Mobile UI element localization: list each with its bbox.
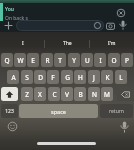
button[interactable]: B [74,87,86,101]
button[interactable]: The [45,37,90,50]
button[interactable]: P [121,53,133,67]
staticText: I'm [108,40,116,47]
staticText: I [22,40,24,47]
button[interactable] [116,8,126,18]
staticText: The [63,40,72,47]
staticText: C [52,90,57,99]
staticText: W [17,56,24,65]
button[interactable] [8,122,17,131]
staticText: D [38,73,43,82]
button[interactable]: F [47,70,59,84]
staticText: You [5,6,14,13]
button[interactable]: J [88,70,100,84]
staticText: I [99,56,102,65]
button[interactable] [119,20,127,31]
staticText: return [109,108,124,115]
staticText: B [78,90,83,99]
staticText: M [104,90,110,99]
staticText: Y [72,56,76,65]
button[interactable] [106,22,115,30]
staticText: On back s [5,15,28,22]
staticText: S [25,73,29,82]
staticText: A [11,73,16,82]
button[interactable]: T [54,53,66,67]
staticText: O [111,56,117,65]
button[interactable] [94,22,101,29]
button[interactable]: W [14,53,26,67]
button[interactable]: L [115,70,127,84]
button[interactable]: E [27,53,39,67]
button[interactable]: N [88,87,100,101]
button[interactable] [16,20,104,31]
button[interactable]: H [74,70,86,84]
button[interactable]: I'm [89,37,134,50]
button[interactable]: C [48,87,60,101]
staticText: H [78,73,83,82]
button[interactable]: 123 [1,104,18,118]
button[interactable]: S [21,70,33,84]
button[interactable]: A [7,70,19,84]
staticText: space [51,108,66,115]
staticText: Z [25,90,29,99]
staticText: L [119,73,123,82]
button[interactable] [4,21,13,30]
button[interactable]: D [34,70,46,84]
staticText: P [125,56,129,65]
button[interactable]: Y [68,53,80,67]
button[interactable]: I [94,53,106,67]
staticText: 123 [5,108,14,115]
staticText: J [93,73,95,82]
button[interactable]: X [34,87,46,101]
staticText: V [65,90,69,99]
button[interactable]: Z [21,87,33,101]
staticText: Q [4,56,10,65]
button[interactable]: O [108,53,120,67]
staticText: U [85,56,90,65]
staticText: R [45,56,50,65]
button[interactable] [1,87,18,101]
button[interactable]: I [0,37,45,50]
button[interactable]: U [81,53,93,67]
button[interactable]: R [41,53,53,67]
staticText: T [58,56,62,65]
button[interactable]: Q [1,53,13,67]
button[interactable]: M [101,87,113,101]
staticText: X [38,90,42,99]
button[interactable]: G [61,70,73,84]
staticText: K [105,73,110,82]
button[interactable]: space [19,104,98,118]
staticText: F [51,73,55,82]
button[interactable] [117,87,134,101]
staticText: N [92,90,97,99]
button[interactable]: V [61,87,73,101]
button[interactable]: return [100,104,133,118]
button[interactable] [120,121,129,134]
staticText: G [65,73,70,82]
button[interactable]: K [101,70,113,84]
staticText: E [31,56,35,65]
